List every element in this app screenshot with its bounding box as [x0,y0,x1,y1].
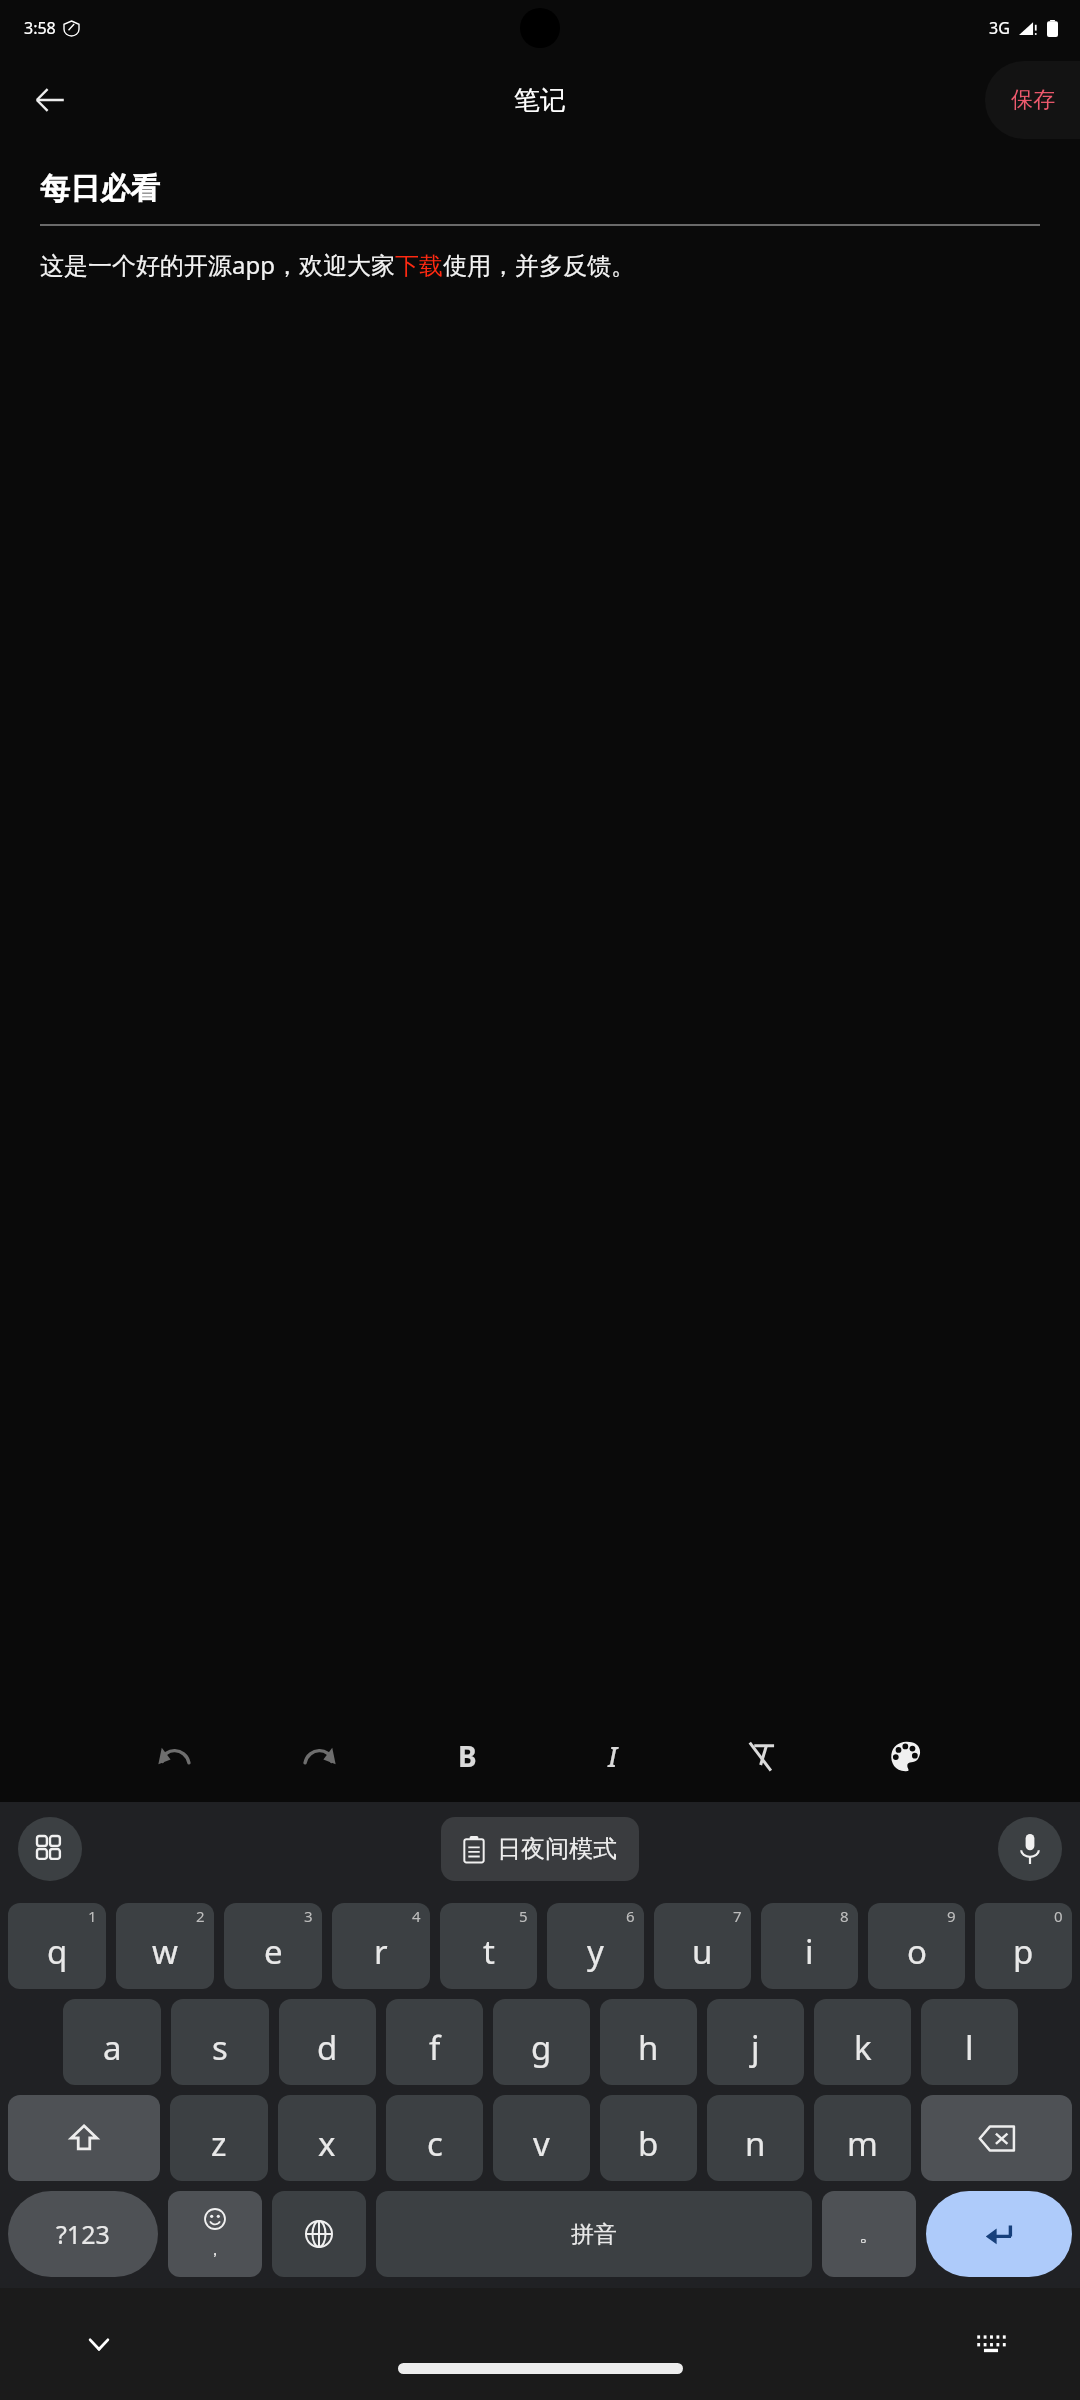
staticText: ， [207,2240,223,2260]
button[interactable]: Back [20,70,80,130]
button[interactable]: Change keyboard [962,2315,1020,2373]
button[interactable]: Bold [438,1727,496,1785]
button[interactable]: q [8,1903,106,1989]
staticText: s [212,2025,228,2070]
staticText: e [264,1929,283,1974]
button[interactable]: x [278,2095,376,2181]
button[interactable]: g [493,1999,590,2085]
button[interactable]: Enter [926,2191,1072,2277]
staticText: d [317,2025,338,2070]
button[interactable]: d [279,1999,376,2085]
button[interactable]: Italic [584,1727,642,1785]
staticText: f [429,2025,441,2070]
staticText: 4 [412,1906,421,1926]
button[interactable]: Period [822,2191,916,2277]
button[interactable]: f [386,1999,483,2085]
staticText: w [152,1929,178,1974]
button[interactable]: p [975,1903,1072,1989]
staticText: 7 [733,1906,742,1926]
button[interactable]: y [547,1903,644,1989]
staticText: r [374,1929,388,1974]
staticText: v [533,2121,550,2166]
staticText: 5 [519,1906,528,1926]
staticText: B [458,1737,477,1775]
button[interactable]: h [600,1999,697,2085]
staticText: 0 [1054,1906,1063,1926]
button[interactable]: z [170,2095,268,2181]
staticText: ?123 [56,2217,110,2251]
button[interactable]: Hide keyboard [70,2315,128,2373]
staticText: p [1013,1929,1034,1974]
button[interactable]: n [707,2095,804,2181]
staticText: c [427,2121,443,2166]
button[interactable]: k [814,1999,911,2085]
staticText: k [854,2025,872,2070]
button[interactable]: 日夜间模式 [441,1817,639,1881]
button[interactable]: Emoji [168,2191,262,2277]
staticText: i [805,1929,814,1974]
staticText: g [531,2025,552,2070]
button[interactable]: w [116,1903,214,1989]
button[interactable]: Clear formatting [731,1727,789,1785]
staticText: I [608,1738,618,1775]
staticText: 保存 [1011,86,1055,114]
button[interactable]: e [224,1903,322,1989]
button[interactable]: m [814,2095,911,2181]
button[interactable]: Voice input [998,1817,1062,1881]
staticText: 每日必看 [40,170,160,208]
staticText: 笔记 [514,84,566,117]
staticText: o [907,1929,927,1974]
staticText: l [965,2025,974,2070]
staticText: n [745,2121,766,2166]
button[interactable]: Keyboard options [18,1817,82,1881]
button[interactable]: o [868,1903,965,1989]
staticText: 。 [859,2222,879,2247]
button[interactable]: a [63,1999,161,2085]
staticText: y [587,1929,604,1974]
button[interactable]: Switch language [272,2191,366,2277]
staticText: q [47,1929,68,1974]
staticText: 3:58 [24,17,56,39]
button[interactable]: c [386,2095,483,2181]
button[interactable]: b [600,2095,697,2181]
staticText: u [692,1929,713,1974]
button[interactable]: 拼音 [376,2191,812,2277]
staticText: h [638,2025,659,2070]
button[interactable]: Text color [877,1727,935,1785]
staticText: j [751,2025,760,2070]
staticText: 6 [626,1906,635,1926]
button[interactable]: r [332,1903,430,1989]
staticText: 这是一个好的开源app，欢迎大家下载使用，并多反馈。 [40,248,635,281]
staticText: z [211,2121,227,2166]
staticText: a [103,2025,122,2070]
staticText: 9 [947,1906,956,1926]
button[interactable]: Backspace [921,2095,1072,2181]
staticText: b [638,2121,659,2166]
button[interactable]: Shift [8,2095,160,2181]
button[interactable]: 保存 [985,61,1080,139]
staticText: 1 [88,1906,97,1926]
button[interactable]: ?123 [8,2191,158,2277]
button[interactable]: v [493,2095,590,2181]
staticText: m [847,2121,878,2166]
staticText: 8 [840,1906,849,1926]
staticText: x [318,2121,336,2166]
button[interactable]: l [921,1999,1018,2085]
staticText: 3 [304,1906,313,1926]
staticText: t [483,1929,495,1974]
button[interactable]: t [440,1903,537,1989]
button[interactable]: i [761,1903,858,1989]
staticText: 拼音 [571,2220,617,2249]
button[interactable]: Undo [145,1727,203,1785]
staticText: 2 [196,1906,205,1926]
staticText: 日夜间模式 [497,1834,617,1864]
button[interactable]: u [654,1903,751,1989]
button[interactable]: s [171,1999,269,2085]
button[interactable]: Redo [291,1727,349,1785]
button[interactable]: j [707,1999,804,2085]
staticText: 3G [989,17,1010,39]
